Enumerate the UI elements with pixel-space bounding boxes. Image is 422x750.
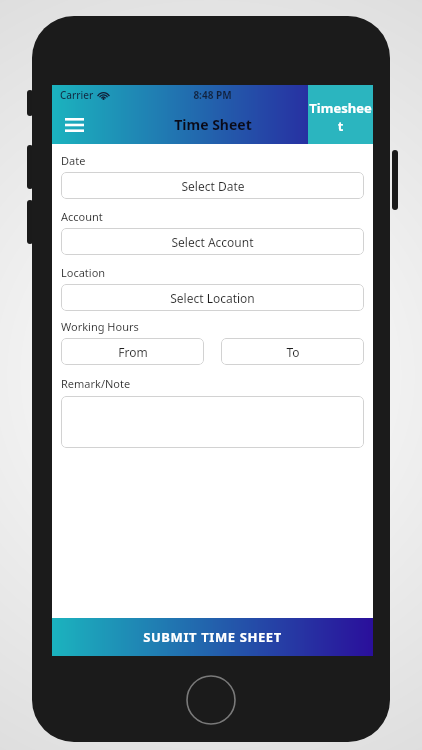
staticText: Working Hours: [61, 319, 364, 334]
staticText: Time Sheet: [174, 115, 252, 134]
staticText: Timesheet: [308, 99, 373, 135]
staticText: Account: [61, 209, 364, 224]
button[interactable]: SUBMIT TIME SHEET: [52, 618, 373, 656]
staticText: Select Location: [170, 290, 255, 306]
staticText: Carrier: [60, 88, 94, 102]
staticText: Remark/Note: [61, 376, 364, 391]
staticText: 8:48 PM: [193, 88, 232, 102]
button[interactable]: Select Account: [61, 228, 364, 255]
staticText: Location: [61, 265, 364, 280]
staticText: Select Account: [171, 234, 254, 250]
button[interactable]: Select Location: [61, 284, 364, 311]
button[interactable]: From: [61, 338, 204, 365]
staticText: From: [118, 344, 148, 360]
staticText: Date: [61, 153, 364, 168]
staticText: To: [286, 344, 300, 360]
staticText: SUBMIT TIME SHEET: [143, 628, 282, 646]
button[interactable]: [61, 396, 364, 448]
button[interactable]: To: [221, 338, 364, 365]
staticText: Select Date: [181, 178, 245, 194]
button[interactable]: Select Date: [61, 172, 364, 199]
button[interactable]: Menu: [60, 111, 88, 139]
